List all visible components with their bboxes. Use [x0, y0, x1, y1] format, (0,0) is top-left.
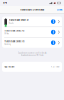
staticText: 4.2.1 (88): [51, 66, 60, 68]
staticText: Transferable Device #1: [9, 19, 29, 21]
staticText: Transferable Device #2: [4, 30, 24, 32]
staticText: Ready: [9, 22, 14, 24]
staticText: i: [53, 40, 54, 45]
button[interactable]: Device info: [50, 19, 56, 24]
staticText: Tap a device to see its transfer details…: [17, 52, 46, 54]
button[interactable]: Device info: [50, 40, 56, 45]
button[interactable]: Device info: [50, 29, 56, 35]
button[interactable]: App Version: [2, 62, 62, 72]
staticText: i: [53, 19, 54, 24]
button[interactable]: Transferable Device #3: [2, 38, 62, 48]
staticText: Offline: [4, 33, 9, 35]
button[interactable]: Transferable Device #2: [2, 27, 62, 37]
staticText: 9:41: [3, 2, 7, 4]
staticText: Transferable Device #3: [4, 40, 24, 43]
staticText: Done: [57, 8, 62, 11]
button[interactable]: Transferable Device #1: [2, 16, 62, 27]
staticText: i: [53, 30, 54, 34]
button[interactable]: Done: [55, 7, 64, 12]
staticText: Downloads move over Wi-Fi only.: [20, 54, 43, 56]
staticText: Transferable Downloads: [20, 8, 44, 11]
staticText: App Version: [4, 66, 14, 68]
staticText: Updating: [4, 43, 11, 45]
